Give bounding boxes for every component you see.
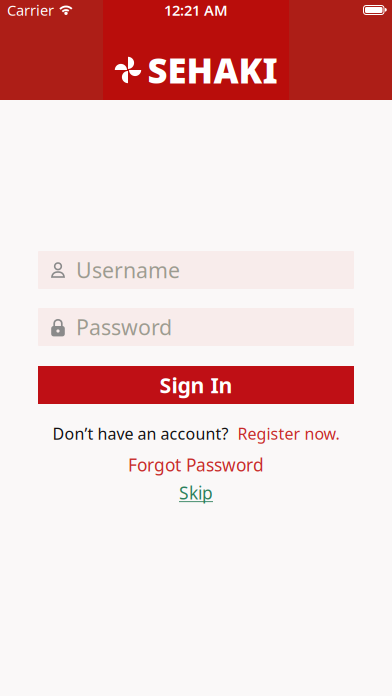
staticText: Don’t have an account? xyxy=(52,423,228,444)
button[interactable]: Register now. xyxy=(237,423,339,444)
staticText: Username xyxy=(76,256,180,284)
textField[interactable]: Username xyxy=(76,256,354,284)
button[interactable]: Forgot Password xyxy=(128,451,264,478)
staticText: 12:21 AM xyxy=(164,0,228,20)
staticText: Skip xyxy=(179,481,213,504)
staticText: Register now. xyxy=(237,423,339,444)
button[interactable]: Skip xyxy=(179,479,213,506)
button[interactable]: Sign In xyxy=(38,366,354,404)
staticText: SEHAKI xyxy=(147,47,277,93)
staticText: Carrier xyxy=(7,0,54,20)
staticText: Password xyxy=(76,313,172,341)
staticText: Sign In xyxy=(159,371,232,399)
secureTextField[interactable]: Password xyxy=(76,313,354,341)
staticText: Forgot Password xyxy=(128,453,264,476)
